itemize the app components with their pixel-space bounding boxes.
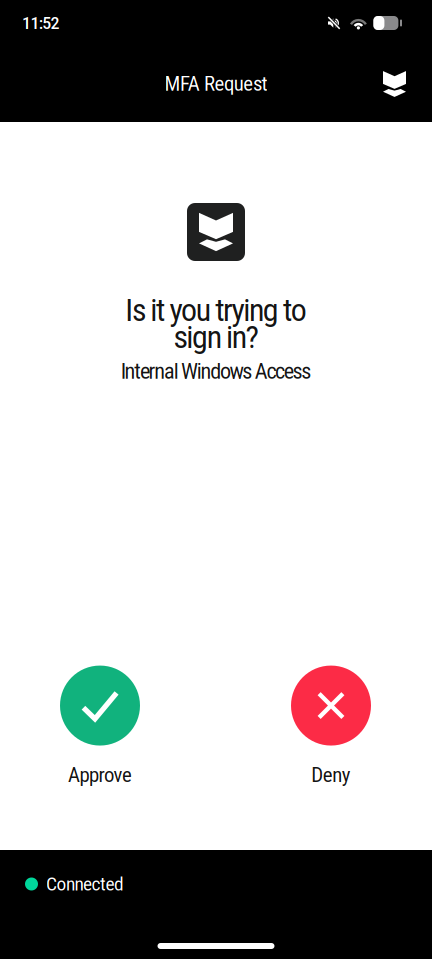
button[interactable]: Menu: [357, 58, 432, 110]
staticText: Is it you trying to: [125, 292, 307, 328]
button[interactable]: Approve: [35, 666, 165, 787]
button[interactable]: Deny: [266, 666, 396, 787]
staticText: MFA Request: [164, 72, 267, 96]
staticText: Approve: [68, 764, 132, 787]
staticText: Internal Windows Access: [121, 359, 311, 384]
staticText: Connected: [46, 873, 124, 895]
staticText: 11:52: [22, 13, 60, 33]
staticText: Deny: [311, 764, 351, 787]
staticText: sign in?: [173, 319, 258, 355]
